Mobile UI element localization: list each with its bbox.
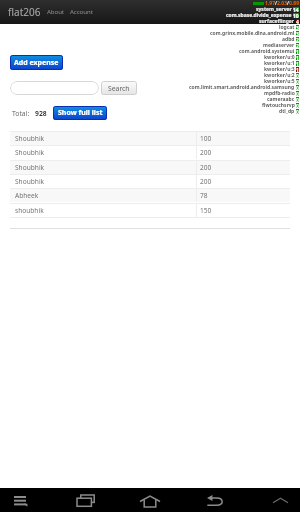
- staticText: mediaserver: [263, 42, 295, 48]
- button[interactable]: Shoubhik: [10, 160, 290, 174]
- staticText: 1: [296, 61, 299, 66]
- staticText: 2: [296, 37, 299, 42]
- staticText: 2.03: [277, 0, 287, 6]
- staticText: Abheek: [15, 191, 39, 200]
- staticText: 200: [200, 163, 212, 172]
- staticText: 0: [296, 79, 299, 84]
- staticText: 1: [296, 55, 299, 60]
- staticText: com.grinx.mobile.dlna.android.ml: [210, 30, 295, 36]
- button[interactable]: About: [47, 0, 65, 24]
- staticText: 0: [296, 85, 299, 90]
- staticText: shoubhik: [15, 206, 44, 215]
- staticText: Search: [108, 84, 130, 93]
- staticText: com.limit.smart.android.android.samsung: [189, 84, 295, 90]
- staticText: Shoubhik: [15, 134, 45, 143]
- staticText: Total:: [12, 109, 30, 118]
- staticText: com.android.systemui: [239, 48, 295, 54]
- staticText: Shoubhik: [15, 148, 45, 157]
- staticText: 100: [200, 134, 212, 143]
- staticText: com.sbase.divide_expense: [226, 12, 292, 18]
- button[interactable]: shoubhik: [10, 203, 290, 217]
- staticText: Shoubhik: [15, 163, 45, 172]
- staticText: system_server: [256, 6, 292, 12]
- button[interactable]: [10, 81, 99, 95]
- staticText: 0.89: [289, 0, 299, 6]
- staticText: 2: [296, 43, 299, 48]
- staticText: Shoubhik: [15, 177, 45, 186]
- staticText: 1.97: [265, 0, 275, 6]
- staticText: 0: [296, 109, 299, 114]
- button[interactable]: Account: [70, 0, 93, 24]
- staticText: 3: [296, 25, 299, 30]
- staticText: Account: [70, 8, 93, 16]
- staticText: cameraabc: [267, 96, 295, 102]
- staticText: 200: [200, 177, 212, 186]
- button[interactable]: Search: [101, 81, 137, 95]
- staticText: /: [275, 0, 277, 6]
- staticText: kworker/u:1: [264, 60, 295, 66]
- button[interactable]: Back: [200, 489, 230, 512]
- staticText: flat206: [8, 5, 41, 19]
- button[interactable]: Add expense: [10, 55, 63, 70]
- button[interactable]: Home: [135, 489, 165, 512]
- staticText: Show full list: [58, 108, 103, 118]
- button[interactable]: Abheek: [10, 188, 290, 202]
- button[interactable]: Menu: [5, 489, 35, 512]
- button[interactable]: Shoubhik: [10, 174, 290, 188]
- button[interactable]: Shoubhik: [10, 131, 290, 145]
- staticText: adbd: [282, 36, 295, 42]
- staticText: 4: [296, 19, 299, 24]
- staticText: 78: [200, 191, 208, 200]
- staticText: 0: [296, 103, 299, 108]
- button[interactable]: Recent apps: [71, 489, 101, 512]
- staticText: About: [47, 8, 65, 16]
- staticText: surfaceflinger: [259, 18, 295, 24]
- staticText: 200: [200, 148, 212, 157]
- button[interactable]: Hide navigation: [265, 488, 295, 512]
- staticText: 150: [200, 206, 212, 215]
- staticText: kworker/u:2: [264, 72, 295, 78]
- button[interactable]: flat206: [8, 0, 41, 24]
- staticText: kworker/u:3: [264, 66, 295, 72]
- staticText: kworker/u:0: [264, 54, 295, 60]
- staticText: 10: [293, 13, 299, 18]
- staticText: logcat: [279, 24, 295, 30]
- staticText: dtl_dp: [279, 108, 295, 114]
- staticText: 3: [296, 31, 299, 36]
- staticText: 1: [296, 67, 299, 72]
- staticText: /: [287, 0, 289, 6]
- staticText: flwtouchsrvp: [262, 102, 295, 108]
- staticText: kworker/u:5: [264, 78, 295, 84]
- button[interactable]: Show full list: [53, 106, 107, 120]
- staticText: 14: [293, 7, 299, 12]
- staticText: 0: [296, 97, 299, 102]
- staticText: 1: [296, 49, 299, 54]
- staticText: 0: [296, 73, 299, 78]
- staticText: mpdfb-radio: [264, 90, 295, 96]
- staticText: 0: [296, 91, 299, 96]
- staticText: Add expense: [14, 58, 59, 68]
- staticText: 928: [35, 109, 47, 118]
- button[interactable]: Shoubhik: [10, 145, 290, 159]
